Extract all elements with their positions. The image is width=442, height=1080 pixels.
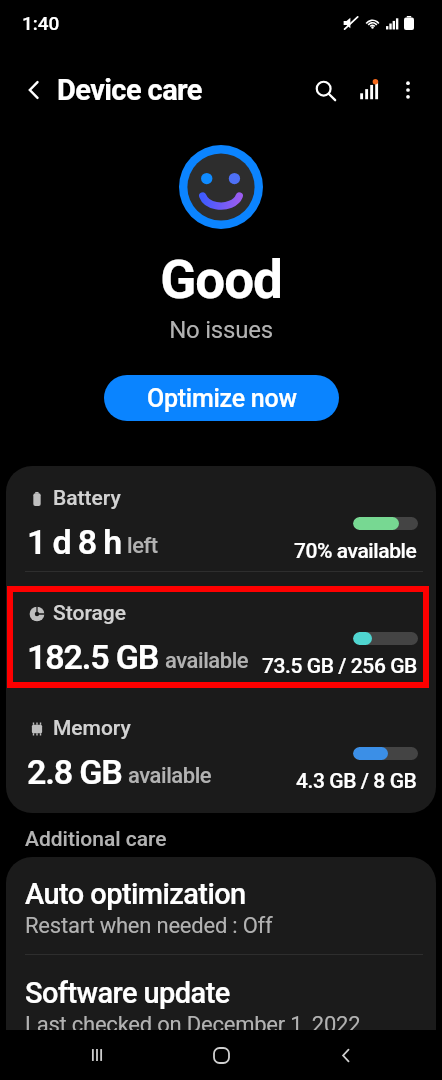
button[interactable]: Home [193, 1030, 249, 1080]
staticText: 70% available [294, 539, 417, 564]
staticText: Software update [25, 976, 230, 1010]
staticText: Battery [53, 486, 121, 511]
staticText: Auto optimization [25, 877, 246, 911]
staticText: available [165, 648, 249, 674]
staticText: Additional care [25, 827, 167, 852]
staticText: Last checked on December 1, 2022 [25, 1012, 361, 1038]
staticText: available [128, 763, 212, 789]
staticText: 73.5 GB / 256 GB [262, 654, 417, 679]
button[interactable]: Navigate up [12, 68, 56, 112]
staticText: No issues [0, 316, 442, 344]
staticText: Device care [57, 73, 202, 107]
button[interactable]: Back [318, 1030, 374, 1080]
staticText: 1:40 [22, 12, 60, 34]
button[interactable]: Memory [6, 696, 436, 801]
button[interactable]: Optimize now [104, 375, 339, 421]
button[interactable]: Recent apps [69, 1030, 125, 1080]
button[interactable]: More options [385, 67, 431, 113]
staticText: 2.8 GB [27, 752, 122, 792]
button[interactable]: Storage [6, 581, 436, 686]
button[interactable]: Battery [6, 466, 436, 571]
staticText: Optimize now [147, 384, 297, 413]
staticText: left [127, 533, 158, 559]
button[interactable]: Diagnostics [346, 67, 392, 113]
staticText: Storage [53, 601, 126, 626]
staticText: 4.3 GB / 8 GB [296, 769, 417, 794]
staticText: Good [0, 249, 442, 311]
staticText: 1 d 8 h [27, 522, 121, 562]
button[interactable]: Search [302, 67, 348, 113]
staticText: 182.5 GB [27, 637, 159, 677]
button[interactable]: Auto optimization [6, 857, 436, 954]
staticText: Restart when needed : Off [25, 913, 273, 939]
button[interactable]: Software update [6, 956, 436, 1053]
staticText: Memory [53, 716, 131, 741]
